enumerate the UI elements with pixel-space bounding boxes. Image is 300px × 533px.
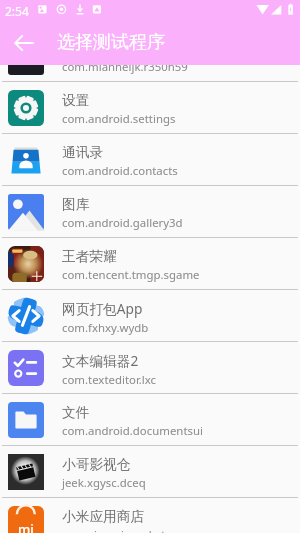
staticText: com.android.settings [62,111,176,127]
staticText: 2:54 [5,3,29,19]
staticText: 小哥影视仓 [62,456,131,473]
button[interactable]: 图库 [2,186,298,237]
staticText: com.xiaomi.market [62,527,166,533]
staticText: jeek.xgysc.dceq [62,475,146,491]
button[interactable]: Back [13,32,35,54]
staticText: 选择测试程序 [57,31,165,54]
staticText: com.android.contacts [62,163,178,179]
staticText: com.tencent.tmgp.sgame [62,267,200,283]
button[interactable]: 通讯录 [2,134,298,185]
button[interactable]: 文本编辑器2 [2,342,298,393]
staticText: 文本编辑器2 [62,351,139,370]
button[interactable]: 小哥影视仓 [2,446,298,497]
button[interactable]: 设置 [2,82,298,133]
staticText: mi [18,520,34,533]
staticText: 图库 [62,196,90,213]
staticText: 通讯录 [62,144,104,161]
staticText: com.android.documentsui [62,423,203,439]
button[interactable]: mi [2,498,298,533]
staticText: com.mianneijk.r350h59 [62,65,188,75]
staticText: 王者荣耀 [62,248,117,265]
staticText: 网页打包App [62,299,143,318]
staticText: 小米应用商店 [62,508,145,525]
button[interactable]: 网页打包App [2,290,298,341]
button[interactable]: 王者荣耀 [2,238,298,289]
staticText: com.android.gallery3d [62,215,183,231]
staticText: com.texteditor.lxc [62,372,157,388]
staticText: com.fxhxy.wydb [62,320,149,336]
button[interactable]: 文件 [2,394,298,445]
staticText: 文件 [62,404,90,421]
staticText: 设置 [62,92,90,109]
